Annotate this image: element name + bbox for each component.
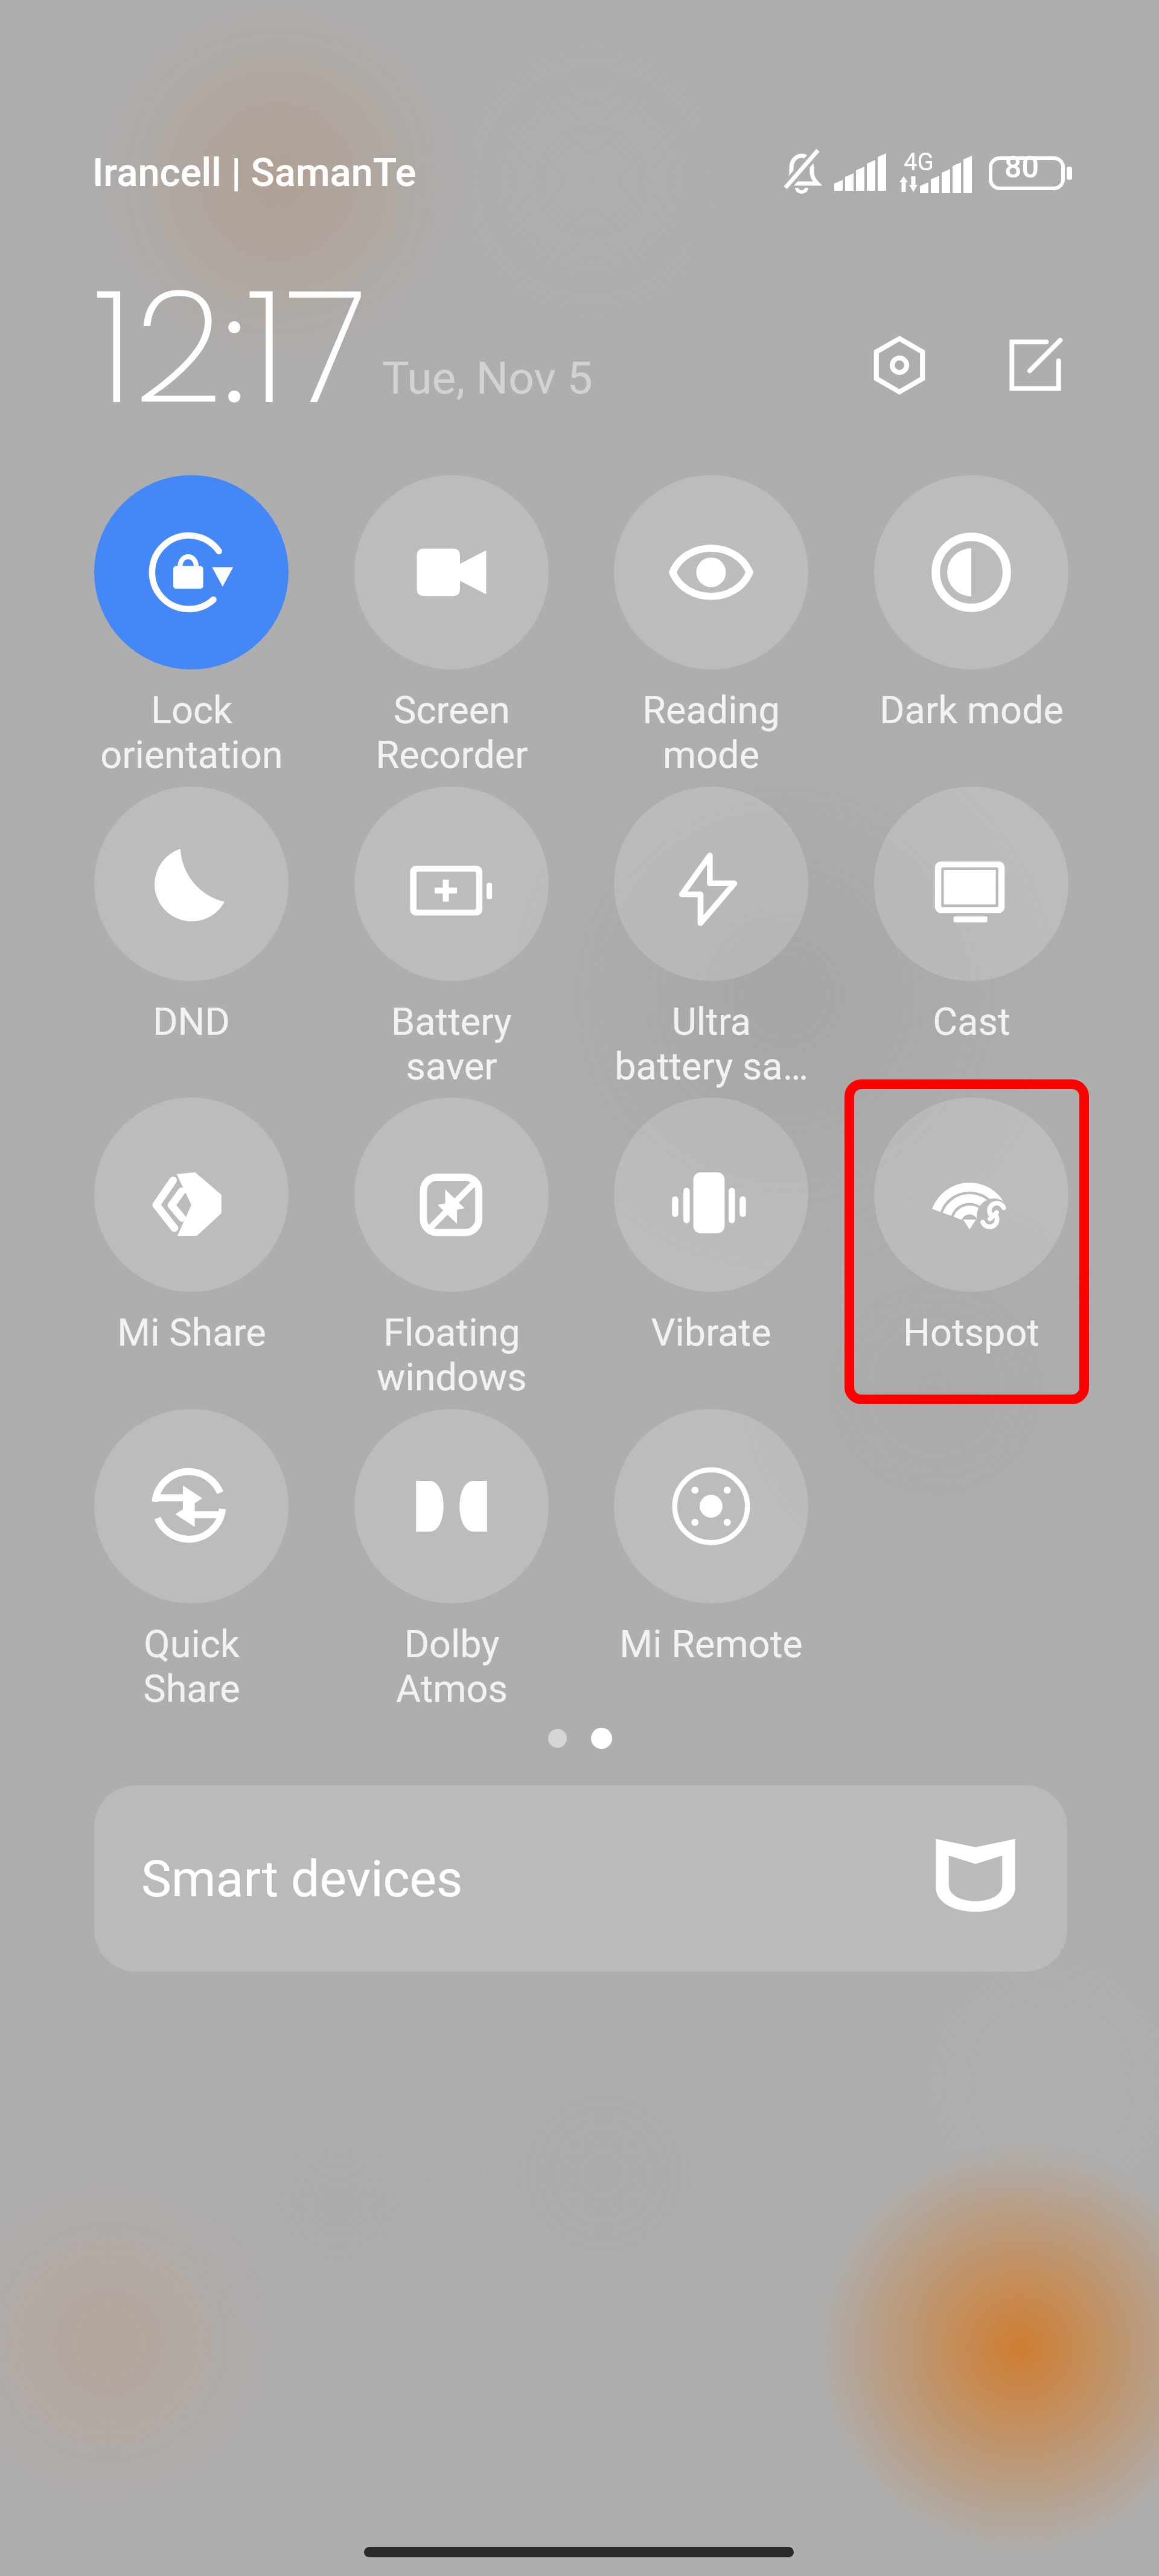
button[interactable]: Mi Remote [581, 1409, 841, 1667]
button[interactable]: Floating windows [322, 1098, 581, 1399]
button[interactable]: Ultra battery sa… [581, 787, 841, 1088]
button[interactable]: Dark mode [841, 475, 1101, 733]
button[interactable]: Mi Share [62, 1098, 321, 1355]
staticText: Vibrate [651, 1311, 771, 1355]
button[interactable]: Lock orientation [62, 475, 321, 777]
staticText: Irancell | SamanTe [92, 150, 417, 196]
button[interactable]: Screen Recorder [322, 475, 581, 777]
staticText: 80 [1004, 150, 1039, 185]
button[interactable]: Vibrate [581, 1098, 841, 1355]
button[interactable]: Edit [999, 329, 1071, 401]
staticText: Dark mode [880, 688, 1064, 733]
button[interactable]: Battery saver [322, 787, 581, 1088]
staticText: Cast [933, 1000, 1011, 1044]
button[interactable]: Smart devices [94, 1785, 1067, 1972]
staticText: 12:17 [94, 238, 367, 456]
staticText: Quick Share [143, 1622, 240, 1711]
button[interactable]: DND [62, 787, 321, 1044]
staticText: Reading mode [642, 688, 780, 777]
staticText: Tue, Nov 5 [382, 351, 593, 404]
staticText: Screen Recorder [375, 688, 528, 777]
staticText: Lock orientation [100, 688, 283, 777]
button[interactable]: Cast [841, 787, 1101, 1044]
button[interactable]: Settings [863, 329, 936, 401]
button[interactable]: Quick Share [62, 1409, 321, 1711]
staticText: Dolby Atmos [396, 1622, 508, 1711]
button[interactable]: Reading mode [581, 475, 841, 777]
staticText: Mi Share [117, 1311, 266, 1355]
staticText: Smart devices [141, 1849, 463, 1908]
staticText: Mi Remote [619, 1622, 803, 1667]
staticText: Hotspot [903, 1311, 1039, 1355]
staticText: DND [153, 1000, 230, 1044]
staticText: Floating windows [377, 1311, 527, 1399]
button[interactable]: Dolby Atmos [322, 1409, 581, 1711]
staticText: Battery saver [391, 1000, 512, 1088]
staticText: Ultra battery sa… [615, 1000, 808, 1088]
button[interactable]: Hotspot [841, 1098, 1101, 1355]
staticText: 4G [904, 148, 934, 176]
